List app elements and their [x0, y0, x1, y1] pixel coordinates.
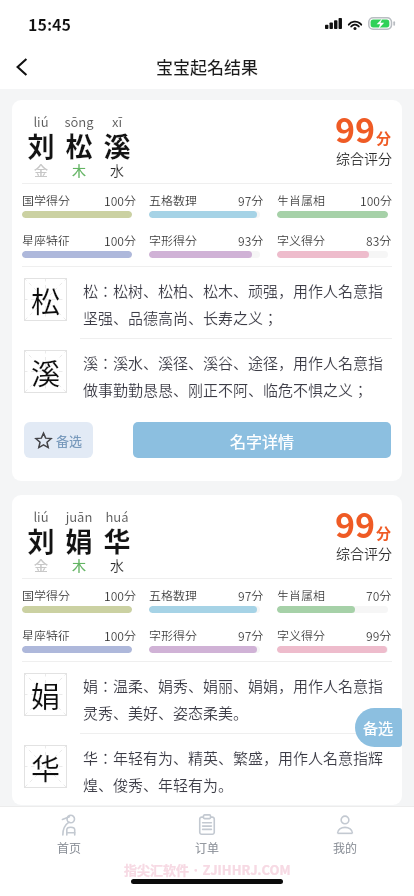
- staticText: 93分: [238, 232, 264, 246]
- staticText: 首页: [57, 839, 82, 856]
- staticText: 100分: [360, 192, 392, 206]
- staticText: 星座特征: [22, 232, 71, 246]
- staticText: 字义得分: [277, 232, 326, 246]
- staticText: 100分: [104, 232, 136, 246]
- staticText: 松: [60, 126, 98, 165]
- staticText: 水: [98, 160, 136, 180]
- staticText: 木: [60, 555, 98, 575]
- staticText: 我的: [333, 839, 358, 856]
- staticText: 娟：温柔、娟秀、娟丽、娟娟，用作人名意指灵秀、美好、姿态柔美。: [83, 675, 393, 723]
- staticText: 分: [376, 522, 392, 544]
- staticText: 备选: [56, 431, 83, 450]
- staticText: 溪: [98, 126, 136, 165]
- staticText: 金: [22, 555, 60, 575]
- staticText: 金: [22, 160, 60, 180]
- button[interactable]: liú: [12, 495, 402, 805]
- staticText: 国学得分: [22, 587, 71, 601]
- staticText: 97分: [238, 192, 264, 206]
- staticText: 字形得分: [149, 627, 198, 641]
- staticText: 刘: [22, 126, 60, 165]
- staticText: 名字详情: [230, 429, 295, 452]
- staticText: 指尖汇软件 · ZJIHHRJ.COM: [124, 860, 291, 879]
- staticText: 订单: [195, 839, 220, 856]
- staticText: 生肖属相: [277, 587, 326, 601]
- staticText: 木: [60, 160, 98, 180]
- staticText: 综合评分: [336, 543, 392, 563]
- staticText: 娟: [31, 674, 61, 716]
- staticText: 综合评分: [336, 148, 392, 168]
- staticText: 宝宝起名结果: [156, 54, 258, 79]
- staticText: 五格数理: [149, 192, 198, 206]
- button[interactable]: 我的: [276, 806, 414, 856]
- staticText: 97分: [238, 587, 264, 601]
- staticText: 83分: [366, 232, 392, 246]
- staticText: 97分: [238, 627, 264, 641]
- button[interactable]: 备选: [24, 422, 93, 458]
- staticText: 五格数理: [149, 587, 198, 601]
- staticText: 99分: [366, 627, 392, 641]
- staticText: 分: [376, 127, 392, 149]
- staticText: 99: [335, 499, 376, 548]
- staticText: 华: [98, 521, 136, 560]
- staticText: 溪：溪水、溪径、溪谷、途径，用作人名意指做事勤勤恳恳、刚正不阿、临危不惧之义；: [83, 352, 393, 400]
- staticText: liú: [22, 112, 60, 131]
- staticText: liú: [22, 507, 60, 526]
- staticText: 松：松树、松柏、松木、顽强，用作人名意指坚强、品德高尚、长寿之义；: [83, 280, 393, 328]
- staticText: 刘: [22, 521, 60, 560]
- button[interactable]: 订单: [138, 806, 276, 856]
- staticText: 华：年轻有为、精英、繁盛，用作人名意指辉煌、俊秀、年轻有为。: [83, 747, 393, 795]
- staticText: 备选: [363, 717, 394, 739]
- staticText: 70分: [366, 587, 392, 601]
- staticText: 生肖属相: [277, 192, 326, 206]
- staticText: 字义得分: [277, 627, 326, 641]
- staticText: 15:45: [28, 12, 71, 35]
- staticText: juān: [60, 507, 98, 526]
- staticText: 华: [31, 746, 61, 788]
- staticText: 99: [335, 104, 376, 153]
- staticText: 国学得分: [22, 192, 71, 206]
- button[interactable]: liú: [12, 100, 402, 481]
- staticText: 星座特征: [22, 627, 71, 641]
- staticText: 字形得分: [149, 232, 198, 246]
- button[interactable]: Back: [0, 45, 44, 89]
- button[interactable]: 备选: [355, 708, 402, 747]
- staticText: 100分: [104, 627, 136, 641]
- button[interactable]: 名字详情: [133, 422, 391, 458]
- staticText: huá: [98, 507, 136, 526]
- button[interactable]: 首页: [0, 806, 138, 856]
- staticText: 100分: [104, 587, 136, 601]
- staticText: 溪: [31, 351, 61, 393]
- staticText: 娟: [60, 521, 98, 560]
- staticText: 松: [31, 279, 61, 321]
- staticText: sōng: [60, 112, 98, 131]
- staticText: xī: [98, 112, 136, 131]
- staticText: 100分: [104, 192, 136, 206]
- staticText: 水: [98, 555, 136, 575]
